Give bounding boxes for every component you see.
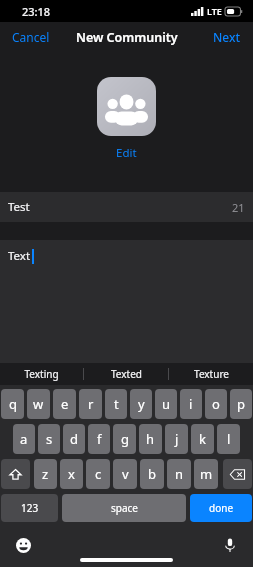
button[interactable]: Texture — [169, 363, 253, 385]
button[interactable]: b — [140, 459, 164, 489]
button[interactable]: i — [180, 389, 202, 419]
staticText: 21 — [232, 200, 245, 215]
staticText: z — [42, 465, 49, 483]
staticText: m — [200, 465, 213, 483]
staticText: Text — [8, 248, 31, 264]
staticText: g — [121, 430, 129, 448]
staticText: a — [20, 430, 28, 448]
button[interactable]: y — [130, 389, 152, 419]
button[interactable]: s — [38, 424, 60, 454]
button[interactable]: space — [62, 494, 186, 522]
staticText: 123 — [21, 501, 39, 515]
button[interactable]: Cancel — [0, 23, 62, 51]
staticText: Texted — [111, 367, 142, 381]
button[interactable]: Community photo — [97, 77, 156, 136]
button[interactable]: n — [167, 459, 191, 489]
staticText: d — [70, 430, 78, 448]
staticText: x — [68, 465, 75, 483]
button[interactable]: u — [155, 389, 177, 419]
staticText: f — [97, 430, 102, 448]
staticText: Test — [8, 199, 30, 215]
button[interactable]: Backspace — [223, 459, 252, 489]
staticText: o — [212, 395, 220, 413]
staticText: l — [227, 430, 231, 448]
button[interactable]: Emoji — [10, 532, 36, 558]
staticText: y — [138, 395, 145, 413]
button[interactable]: Texted — [84, 363, 168, 385]
button[interactable]: v — [113, 459, 137, 489]
button[interactable]: Edit — [102, 142, 151, 164]
staticText: 23:18 — [22, 4, 51, 19]
staticText: i — [189, 395, 193, 413]
staticText: space — [111, 501, 138, 515]
button[interactable]: Shift — [1, 459, 30, 489]
button[interactable]: l — [217, 424, 240, 454]
staticText: Edit — [116, 145, 137, 161]
button[interactable]: t — [105, 389, 127, 419]
button[interactable]: z — [34, 459, 57, 489]
staticText: c — [95, 465, 102, 483]
staticText: n — [175, 465, 184, 483]
staticText: p — [237, 395, 245, 413]
button[interactable]: 123 — [1, 494, 58, 522]
button[interactable]: d — [63, 424, 85, 454]
staticText: done — [209, 501, 234, 515]
staticText: Next — [213, 29, 241, 45]
staticText: h — [146, 430, 155, 448]
button[interactable]: p — [230, 389, 252, 419]
staticText: New Community — [76, 29, 178, 46]
button[interactable]: r — [79, 389, 102, 419]
button[interactable]: k — [191, 424, 214, 454]
button[interactable]: q — [1, 389, 24, 419]
button[interactable]: Test — [0, 192, 253, 222]
staticText: e — [61, 395, 69, 413]
staticText: r — [88, 395, 94, 413]
staticText: w — [33, 395, 44, 413]
button[interactable]: Text — [0, 240, 253, 272]
staticText: v — [122, 465, 129, 483]
staticText: k — [199, 430, 206, 448]
staticText: Cancel — [12, 29, 50, 45]
staticText: j — [175, 430, 179, 448]
button[interactable]: a — [13, 424, 35, 454]
button[interactable]: m — [194, 459, 218, 489]
staticText: Texture — [194, 367, 229, 381]
button[interactable]: j — [165, 424, 188, 454]
button[interactable]: Next — [201, 23, 253, 51]
staticText: s — [46, 430, 53, 448]
button[interactable]: x — [60, 459, 83, 489]
button[interactable]: e — [53, 389, 76, 419]
button[interactable]: g — [113, 424, 136, 454]
button[interactable]: w — [27, 389, 50, 419]
button[interactable]: Texting — [0, 363, 83, 385]
button[interactable]: h — [139, 424, 162, 454]
button[interactable]: f — [88, 424, 110, 454]
staticText: u — [162, 395, 171, 413]
button[interactable]: o — [205, 389, 227, 419]
button[interactable]: c — [86, 459, 110, 489]
staticText: LTE — [207, 5, 222, 17]
staticText: t — [114, 395, 119, 413]
staticText: Texting — [24, 367, 59, 381]
staticText: q — [9, 395, 17, 413]
button[interactable]: Dictation — [217, 532, 243, 558]
staticText: b — [148, 465, 156, 483]
button[interactable]: done — [190, 494, 252, 522]
